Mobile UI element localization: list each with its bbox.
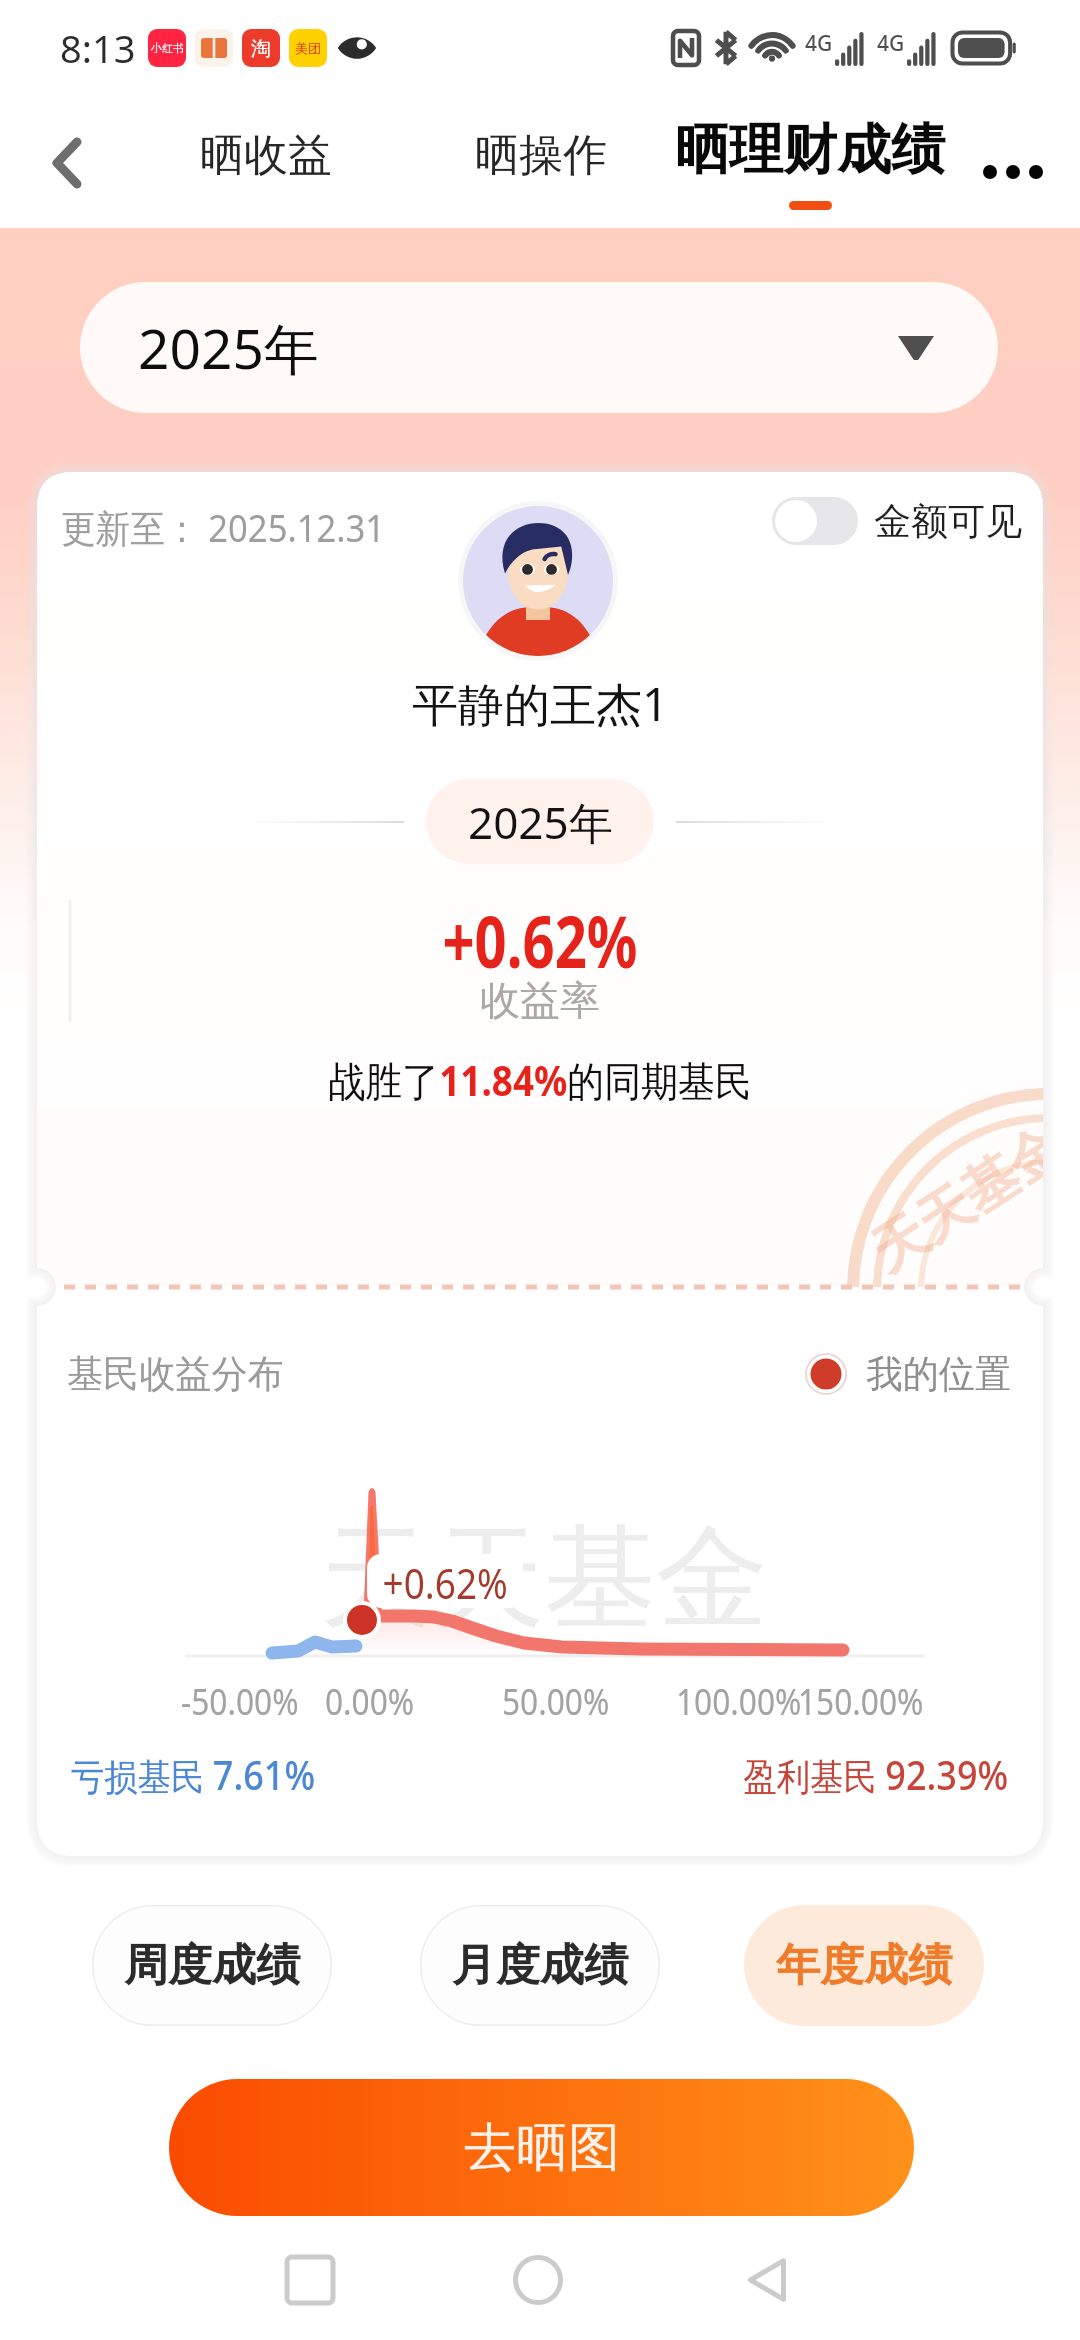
staticText: 年度成绩 [776, 1938, 952, 1993]
staticText: 2025年 [468, 792, 613, 852]
staticText: 金额可见 [874, 498, 1022, 545]
button[interactable]: 金额可见 [768, 493, 1026, 549]
staticText: 我的位置 [867, 1350, 1011, 1398]
staticText: 4G [805, 29, 833, 58]
staticText: 晒理财成绩 [675, 116, 945, 184]
staticText: 天天基金 [858, 1112, 1043, 1286]
staticText: 100.00% [676, 1677, 802, 1726]
button[interactable]: 晒收益 [184, 120, 348, 191]
button[interactable]: Recents [265, 2235, 355, 2325]
staticText: -50.00% [181, 1677, 299, 1726]
staticText: 战胜了11.84%的同期基民 [328, 1052, 752, 1108]
button[interactable]: 晒理财成绩 [659, 112, 961, 214]
staticText: 亏损基民 7.61% [71, 1747, 316, 1801]
staticText: 盈利基民 92.39% [743, 1747, 1009, 1801]
staticText: 小红书 [151, 41, 184, 55]
button[interactable]: More options [973, 134, 1053, 210]
button[interactable]: 2025年 [80, 282, 998, 413]
staticText: 50.00% [502, 1677, 609, 1726]
button[interactable]: 周度成绩 [92, 1905, 332, 2026]
staticText: 晒收益 [200, 128, 332, 183]
button[interactable]: Home [493, 2235, 583, 2325]
staticText: 晒操作 [475, 128, 607, 183]
staticText: 周度成绩 [124, 1938, 300, 1993]
staticText: 150.00% [798, 1677, 924, 1726]
staticText: 收益率 [480, 975, 600, 1025]
staticText: 淘 [251, 36, 271, 61]
staticText: 2025年 [138, 310, 319, 385]
button[interactable]: 年度成绩 [744, 1905, 984, 2026]
button[interactable]: 月度成绩 [420, 1905, 660, 2026]
staticText: 去晒图 [464, 2115, 620, 2181]
staticText: 美团 [295, 40, 321, 56]
button[interactable]: 去晒图 [169, 2079, 914, 2216]
staticText: +0.62% [442, 891, 637, 989]
staticText: +0.62% [383, 1554, 508, 1608]
staticText: 更新至： 2025.12.31 [61, 501, 386, 553]
staticText: 月度成绩 [452, 1938, 628, 1993]
staticText: 基民收益分布 [67, 1350, 284, 1398]
staticText: 平静的王杰1 [412, 672, 669, 735]
staticText: 4G [877, 29, 905, 58]
staticText: 0.00% [325, 1677, 415, 1726]
button[interactable]: Back [722, 2235, 812, 2325]
button[interactable]: 晒操作 [459, 120, 623, 191]
staticText: 8:13 [60, 22, 136, 74]
button[interactable]: Back [22, 118, 112, 208]
staticText: 天天基金 [320, 1508, 768, 1649]
